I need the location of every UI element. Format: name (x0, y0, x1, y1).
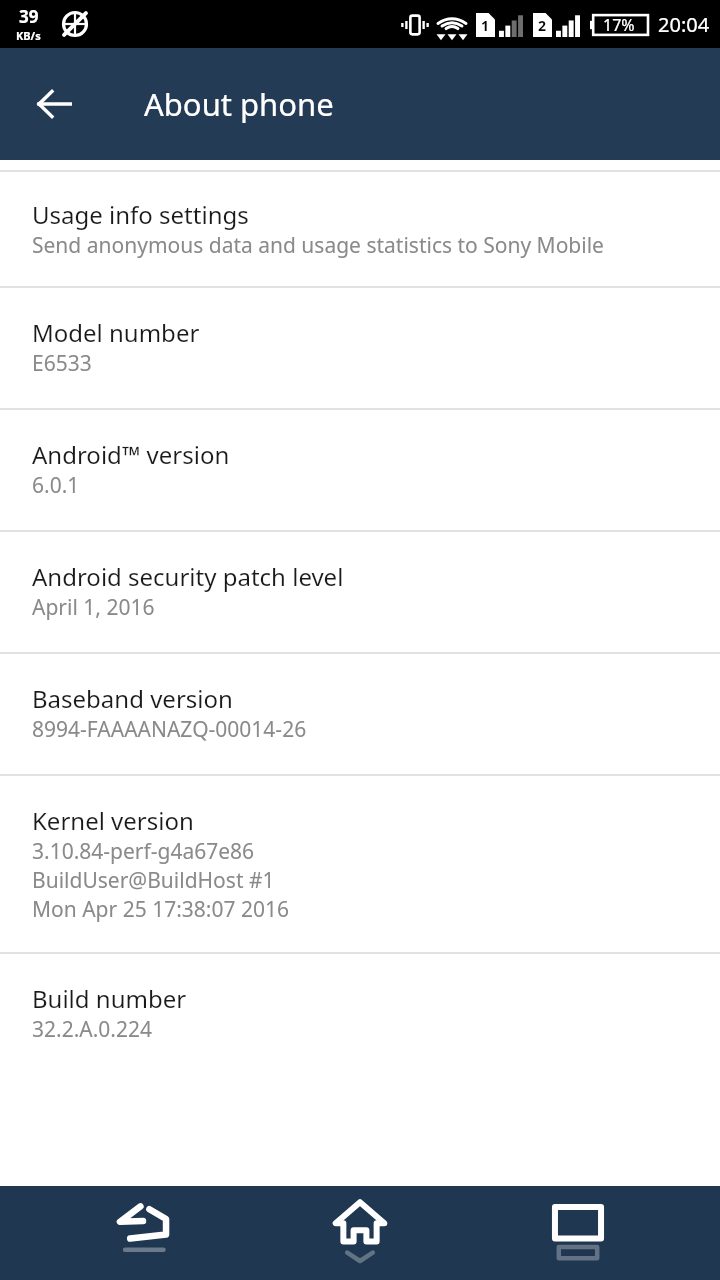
button[interactable]: Usage info settings (0, 172, 720, 286)
button[interactable]: Kernel version (0, 776, 720, 952)
staticText: E6533 (32, 349, 92, 378)
button[interactable]: Baseband version (0, 654, 720, 774)
staticText: 3.10.84-perf-g4a67e86 (32, 837, 255, 866)
staticText: Android security patch level (32, 560, 344, 593)
staticText: BuildUser@BuildHost #1 (32, 866, 275, 895)
button[interactable]: Back (22, 72, 86, 136)
button[interactable]: Build number (0, 954, 720, 1074)
staticText: About phone (144, 83, 334, 125)
staticText: Usage info settings (32, 198, 249, 231)
staticText: Model number (32, 316, 200, 349)
staticText: April 1, 2016 (32, 593, 155, 622)
staticText: Kernel version (32, 804, 194, 837)
staticText: 2 (538, 16, 547, 35)
staticText: 20:04 (658, 11, 710, 38)
button[interactable]: Back (68, 1186, 218, 1280)
button[interactable]: Android security patch level (0, 532, 720, 652)
staticText: 17% (603, 14, 635, 36)
button[interactable]: Android™ version (0, 410, 720, 530)
staticText: 39 (19, 5, 39, 28)
staticText: Build number (32, 982, 187, 1015)
staticText: 6.0.1 (32, 471, 80, 500)
staticText: 32.2.A.0.224 (32, 1015, 153, 1044)
staticText: Baseband version (32, 682, 233, 715)
staticText: KB/s (16, 28, 41, 43)
staticText: 1 (481, 16, 490, 35)
button[interactable]: Recent apps (503, 1186, 653, 1280)
button[interactable]: Home (285, 1186, 435, 1280)
staticText: Send anonymous data and usage statistics… (32, 231, 604, 260)
staticText: Android™ version (32, 438, 230, 471)
button[interactable]: Model number (0, 288, 720, 408)
staticText: Mon Apr 25 17:38:07 2016 (32, 895, 289, 924)
staticText: 8994-FAAAANAZQ-00014-26 (32, 715, 307, 744)
